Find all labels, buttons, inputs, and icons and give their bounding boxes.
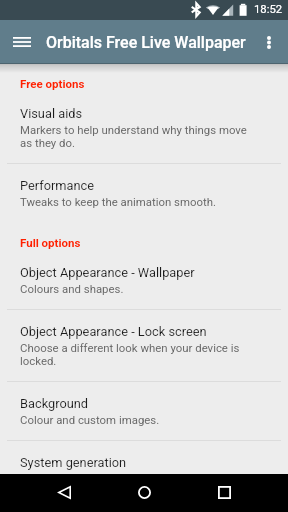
button[interactable]: More options [251,24,287,60]
staticText: Colours and shapes. [20,282,124,295]
staticText: 18:52 [254,3,283,16]
staticText: System generation [20,455,127,470]
staticText: Free options [20,77,288,90]
button[interactable]: Performance [0,164,288,222]
staticText: Object Appearance - Lock screen [20,324,207,339]
button[interactable]: Open navigation drawer [4,24,40,60]
button[interactable]: Home [126,474,162,510]
staticText: Background [20,396,89,411]
staticText: Performance [20,178,95,193]
staticText: Colour and custom images. [20,413,160,426]
staticText: Orbitals Free Live Wallpaper [46,33,246,52]
staticText: Full options [20,236,288,249]
button[interactable]: Recent apps [206,474,242,510]
staticText: Visual aids [20,106,83,121]
staticText: Tweaks to keep the animation smooth. [20,195,216,208]
button[interactable]: Object Appearance - Lock screen [0,310,288,381]
staticText: Markers to help understand why things mo… [20,123,260,149]
button[interactable]: Back [46,474,82,510]
staticText: Choose a different look when your device… [20,341,260,367]
button[interactable]: Background [0,382,288,440]
button[interactable]: Visual aids [0,92,288,163]
button[interactable]: System generation [0,441,288,474]
staticText: Object Appearance - Wallpaper [20,265,195,280]
button[interactable]: Object Appearance - Wallpaper [0,251,288,309]
